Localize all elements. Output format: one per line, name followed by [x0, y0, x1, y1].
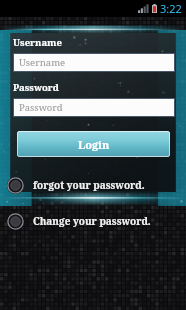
staticText: Login — [78, 137, 110, 152]
staticText: Password — [13, 81, 59, 94]
button[interactable]: Password — [14, 99, 174, 116]
staticText: Password — [19, 101, 63, 114]
button[interactable]: Username — [14, 54, 174, 71]
button[interactable]: forgot your password. — [0, 174, 186, 196]
other: forgot your password. — [7, 177, 24, 194]
other: Change your password. — [7, 213, 24, 230]
staticText: Username — [13, 36, 62, 49]
button[interactable]: Change your password. — [0, 210, 186, 232]
staticText: Change your password. — [33, 214, 151, 228]
staticText: Username — [19, 56, 66, 69]
staticText: forgot your password. — [33, 178, 145, 192]
button[interactable]: Login — [17, 131, 170, 157]
staticText: 3:22 — [160, 1, 182, 16]
